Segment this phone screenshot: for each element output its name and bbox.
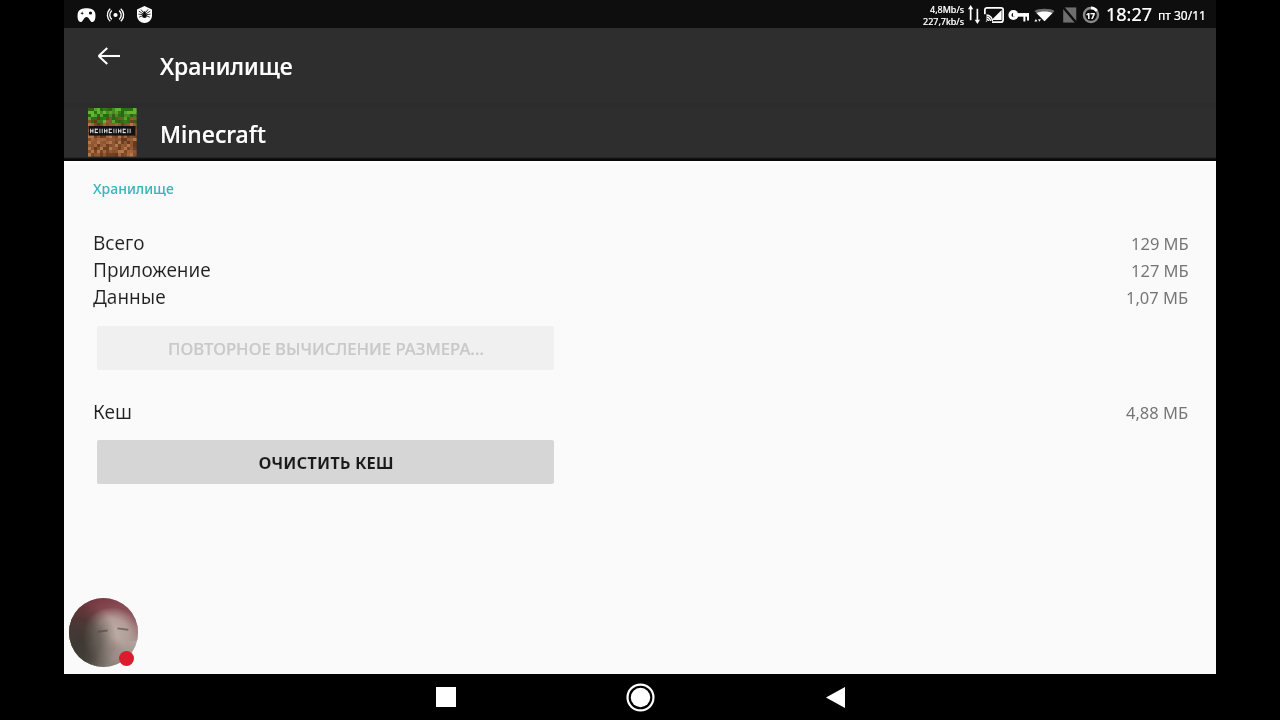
button[interactable]: Обзор: [424, 675, 468, 719]
staticText: ОЧИСТИТЬ КЕШ: [258, 451, 394, 474]
staticText: Minecraft: [160, 118, 266, 149]
staticText: ПОВТОРНОЕ ВЫЧИСЛЕНИЕ РАЗМЕРА...: [168, 337, 484, 360]
staticText: 227,7kb/s: [923, 15, 965, 27]
button[interactable]: ПОВТОРНОЕ ВЫЧИСЛЕНИЕ РАЗМЕРА...: [97, 326, 554, 370]
button[interactable]: ОЧИСТИТЬ КЕШ: [97, 440, 554, 484]
staticText: Всего: [93, 230, 145, 256]
staticText: пт 30/11: [1158, 7, 1206, 23]
staticText: Данные: [93, 284, 166, 310]
button[interactable]: Назад: [813, 675, 857, 719]
staticText: 127 МБ: [1131, 259, 1189, 281]
staticText: 1,07 МБ: [1126, 286, 1189, 308]
staticText: Хранилище: [93, 179, 174, 198]
staticText: 17: [1086, 10, 1096, 21]
staticText: Кеш: [93, 399, 132, 425]
staticText: Приложение: [93, 257, 211, 283]
staticText: 4,88 МБ: [1126, 401, 1189, 423]
staticText: Хранилище: [160, 50, 293, 81]
button[interactable]: Minecraft: [64, 106, 1216, 161]
button[interactable]: Главный экран: [618, 675, 662, 719]
button[interactable]: Назад: [85, 32, 133, 80]
staticText: 129 МБ: [1131, 232, 1189, 254]
staticText: 4,8Mb/s: [930, 3, 965, 15]
button[interactable]: Запись экрана: [69, 598, 138, 667]
staticText: 18:27: [1106, 2, 1153, 27]
